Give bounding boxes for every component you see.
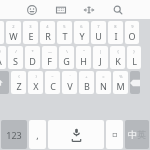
button[interactable]: 6 xyxy=(74,21,89,44)
staticText: L xyxy=(132,55,137,67)
button[interactable]: 2 xyxy=(6,21,21,44)
button[interactable]: Shift xyxy=(0,71,9,94)
button[interactable]: Emoji xyxy=(22,0,42,19)
button[interactable]: 3 xyxy=(23,21,38,44)
button[interactable]: — xyxy=(42,46,57,69)
staticText: , xyxy=(36,129,39,141)
staticText: Y xyxy=(79,30,85,42)
staticText: 123 xyxy=(6,129,22,141)
staticText: " xyxy=(83,49,85,54)
staticText: 2 xyxy=(12,24,15,29)
staticText: A xyxy=(0,55,2,67)
staticText: ) xyxy=(35,74,37,79)
button[interactable]: " xyxy=(76,46,91,69)
button[interactable]: Numbers xyxy=(1,120,27,149)
staticText: T xyxy=(62,30,68,42)
staticText: — xyxy=(48,49,52,54)
button[interactable]: ` xyxy=(62,71,77,94)
button[interactable]: / xyxy=(8,46,23,69)
staticText: F xyxy=(47,55,52,67)
staticText: K xyxy=(115,55,121,67)
staticText: 7 xyxy=(97,24,100,29)
staticText: ~ xyxy=(51,74,54,79)
staticText: R xyxy=(45,30,51,42)
button[interactable]: 1 xyxy=(0,21,4,44)
button[interactable]: 8 xyxy=(108,21,123,44)
button[interactable]: ) xyxy=(28,71,43,94)
staticText: { xyxy=(117,49,119,54)
staticText: N xyxy=(100,80,107,92)
button[interactable]: { xyxy=(110,46,125,69)
button[interactable]: = xyxy=(96,71,111,94)
staticText: G xyxy=(63,55,70,67)
staticText: \ xyxy=(66,49,68,54)
staticText: I xyxy=(114,30,118,42)
staticText: B xyxy=(84,80,90,92)
staticText: / xyxy=(15,49,17,54)
staticText: 4 xyxy=(46,24,49,29)
button[interactable]: | xyxy=(93,46,108,69)
staticText: 5 xyxy=(63,24,66,29)
staticText: ` xyxy=(69,74,71,79)
button[interactable]: Clipboard xyxy=(51,0,71,19)
staticText: V xyxy=(67,80,73,92)
staticText: C xyxy=(50,80,56,92)
staticText: D xyxy=(29,55,36,67)
staticText: J xyxy=(99,55,102,67)
staticText: * xyxy=(31,49,34,54)
button[interactable]: ( xyxy=(11,71,26,94)
staticText: X xyxy=(33,80,39,92)
staticText: O xyxy=(128,30,136,42)
staticText: 英 xyxy=(137,129,146,140)
staticText: 6 xyxy=(80,24,83,29)
staticText: M xyxy=(116,80,125,92)
button[interactable]: 9 xyxy=(125,21,139,44)
button[interactable]: ~ xyxy=(45,71,60,94)
staticText: @ xyxy=(0,49,1,54)
staticText: 8 xyxy=(114,24,117,29)
button[interactable]: ▫ xyxy=(106,120,123,149)
button[interactable]: 5 xyxy=(57,21,72,44)
button[interactable]: \ xyxy=(59,46,74,69)
staticText: Z xyxy=(16,80,22,92)
button[interactable]: , xyxy=(29,120,46,149)
button[interactable]: } xyxy=(127,46,141,69)
button[interactable]: % xyxy=(113,71,128,94)
staticText: S xyxy=(13,55,18,67)
button[interactable]: Backspace xyxy=(130,71,140,94)
staticText: H xyxy=(80,55,87,67)
staticText: 9 xyxy=(131,24,134,29)
button[interactable]: Switch Chinese English xyxy=(125,120,149,149)
button[interactable]: + xyxy=(79,71,94,94)
staticText: | xyxy=(99,49,102,54)
staticText: ( xyxy=(18,74,20,79)
staticText: 3 xyxy=(29,24,32,29)
button[interactable]: @ xyxy=(0,46,6,69)
staticText: U xyxy=(95,30,102,42)
staticText: E xyxy=(28,30,34,42)
button[interactable]: * xyxy=(25,46,40,69)
staticText: ▫ xyxy=(112,130,118,139)
button[interactable]: 4 xyxy=(40,21,55,44)
button[interactable]: Search xyxy=(108,0,128,19)
button[interactable]: Move cursor xyxy=(79,0,99,19)
staticText: } xyxy=(133,49,135,54)
staticText: W xyxy=(9,30,18,42)
staticText: 中 xyxy=(128,129,137,140)
button[interactable]: Space, voice input xyxy=(48,120,104,149)
staticText: % xyxy=(119,74,123,79)
staticText: = xyxy=(102,74,105,79)
staticText: + xyxy=(85,74,88,79)
button[interactable]: 7 xyxy=(91,21,106,44)
